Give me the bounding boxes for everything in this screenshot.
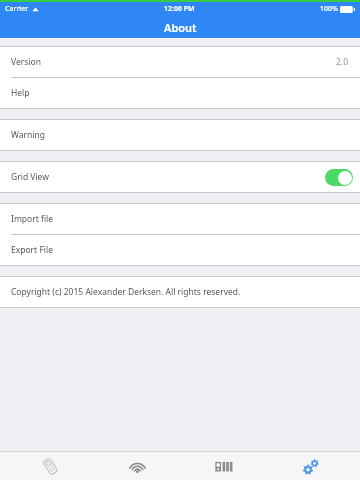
staticText: 100% [320,4,338,14]
staticText: Carrier [5,4,29,14]
staticText: About [164,20,197,35]
button[interactable]: Warning [0,120,360,150]
button[interactable]: Version [0,47,360,77]
button[interactable]: Remote control [14,452,86,480]
staticText: Help [11,87,30,99]
button[interactable]: Grid View toggle, on [325,169,353,186]
button[interactable]: Help [0,78,360,108]
staticText: Copyright (c) 2015 Alexander Derksen. Al… [11,286,241,298]
button[interactable]: Copyright (c) 2015 Alexander Derksen. Al… [0,277,360,307]
button[interactable]: Wi-Fi [101,452,173,480]
staticText: Version [11,56,41,68]
staticText: 2.0 [336,56,349,68]
button[interactable]: Devices [187,452,259,480]
staticText: Import file [11,213,54,225]
button[interactable]: Export File [0,235,360,265]
button[interactable]: Import file [0,204,360,234]
staticText: 12:06 PM [164,4,195,14]
button[interactable]: Settings [274,452,346,480]
staticText: Warning [11,129,45,141]
button[interactable]: Grid View [0,162,360,192]
staticText: Grid View [11,171,49,183]
staticText: Export File [11,244,53,256]
